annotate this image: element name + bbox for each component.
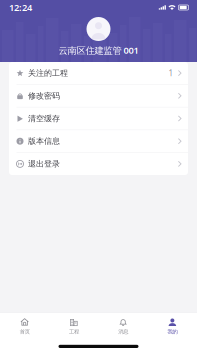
button[interactable]: 退出登录 [9,153,188,175]
button[interactable]: 工程 [49,316,98,336]
staticText: 工程 [69,328,79,335]
staticText: 1 [169,68,174,78]
staticText: 我的 [167,328,177,335]
button[interactable]: 关注的工程 [9,62,188,84]
button[interactable]: 版本信息 [9,130,188,152]
button[interactable]: 消息 [98,316,148,336]
staticText: 版本信息 [28,136,60,146]
button[interactable]: 首页 [0,316,49,336]
button[interactable]: 我的 [148,316,197,336]
staticText: 12:24 [9,1,32,14]
staticText: 云南区住建监管 001 [58,44,138,56]
staticText: 退出登录 [28,159,60,169]
button[interactable]: 修改密码 [9,85,188,107]
staticText: 修改密码 [28,91,60,101]
staticText: 消息 [118,328,128,335]
staticText: 关注的工程 [28,68,68,78]
button[interactable]: 清空缓存 [9,107,188,130]
staticText: 清空缓存 [28,114,60,123]
staticText: 首页 [20,328,30,335]
